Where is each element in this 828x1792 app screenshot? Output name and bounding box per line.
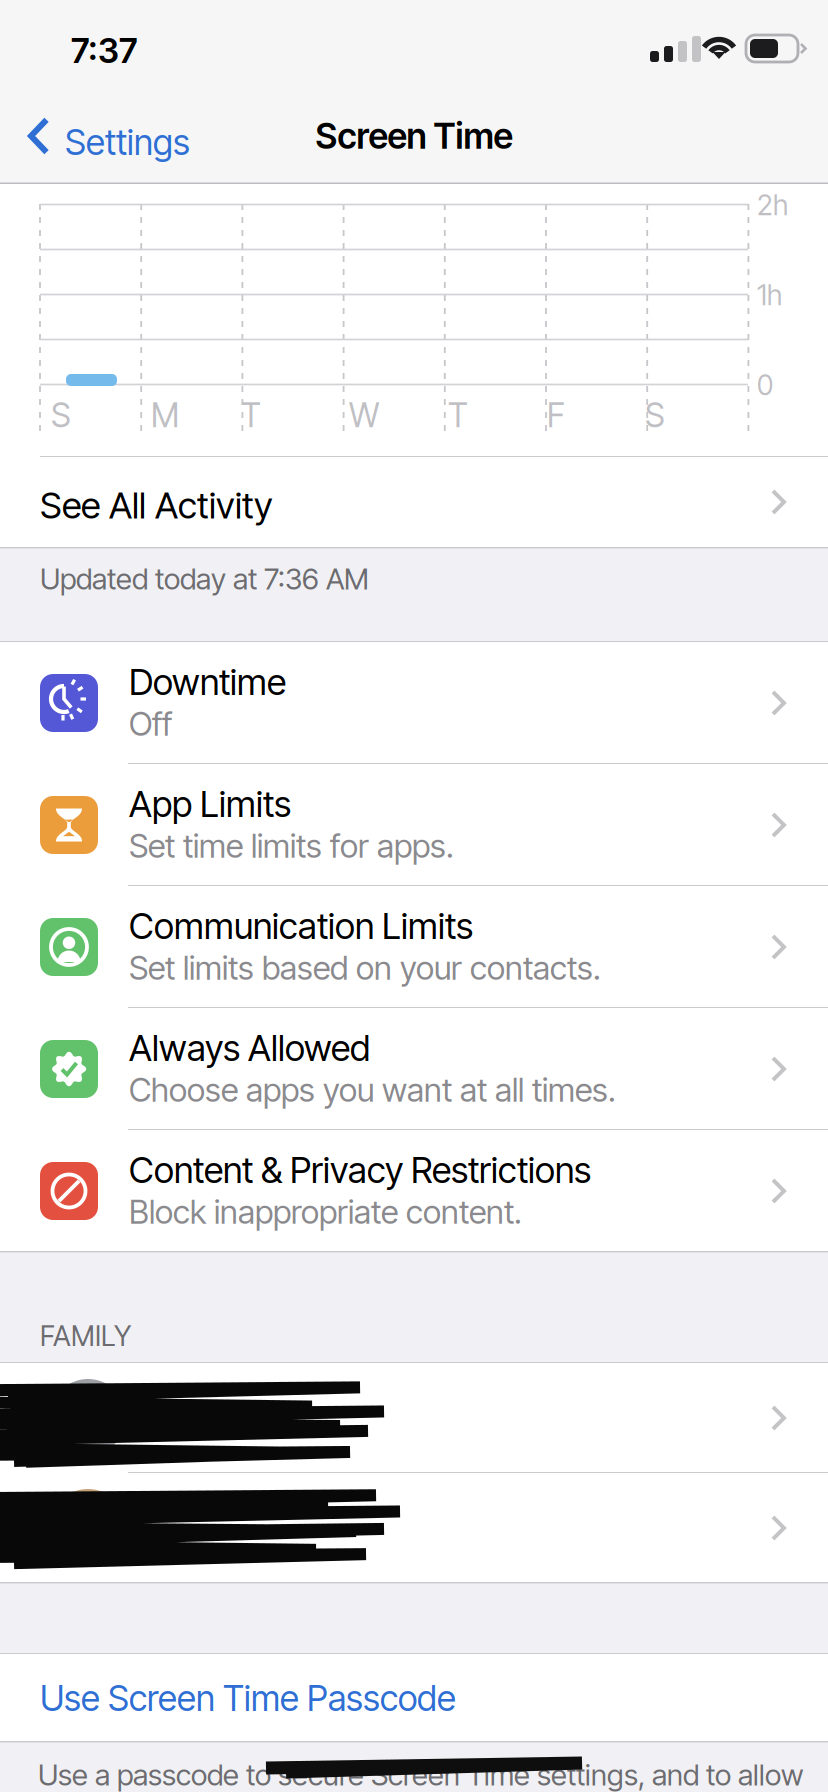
button[interactable]: See All Activity [0,457,828,548]
staticText: Content & Privacy Restrictions [129,1148,591,1192]
staticText: Choose apps you want at all times. [129,1070,616,1109]
staticText: S [645,395,665,435]
staticText: Screen Time [315,115,512,157]
staticText: Block inappropriate content. [129,1192,522,1231]
staticText: 2h [757,188,788,222]
staticText: S [51,395,71,435]
staticText: Settings [65,121,190,164]
staticText: Always Allowed [129,1026,370,1070]
staticText: 7:37 [71,30,137,71]
staticText: Downtime [129,660,286,704]
staticText: 1h [757,278,782,312]
staticText: Communication Limits [129,904,473,948]
staticText: Use Screen Time Passcode [40,1677,456,1720]
staticText: See All Activity [40,483,273,527]
staticText: F [547,395,565,435]
button[interactable] [0,1363,828,1473]
button[interactable]: Use Screen Time Passcode [0,1654,828,1741]
staticText: Use a passcode to secure Screen Time set… [38,1757,803,1792]
staticText: W [349,395,379,435]
staticText: M [151,395,179,435]
staticText: Set time limits for apps. [129,826,454,865]
button[interactable]: Content & Privacy Restrictions [0,1130,828,1252]
button[interactable] [0,1473,828,1582]
staticText: Updated today at 7:36 AM [40,561,369,596]
staticText: FAMILY [40,1319,131,1353]
staticText: T [448,395,468,435]
staticText: Set limits based on your contacts. [129,948,601,987]
button[interactable]: Always Allowed [0,1008,828,1130]
staticText: T [241,395,261,435]
staticText: App Limits [129,782,291,826]
staticText: 0 [757,368,773,402]
staticText: Off [129,704,172,743]
button[interactable]: Communication Limits [0,886,828,1008]
button[interactable]: Settings [20,104,200,174]
button[interactable]: Downtime [0,642,828,764]
button[interactable]: App Limits [0,764,828,886]
